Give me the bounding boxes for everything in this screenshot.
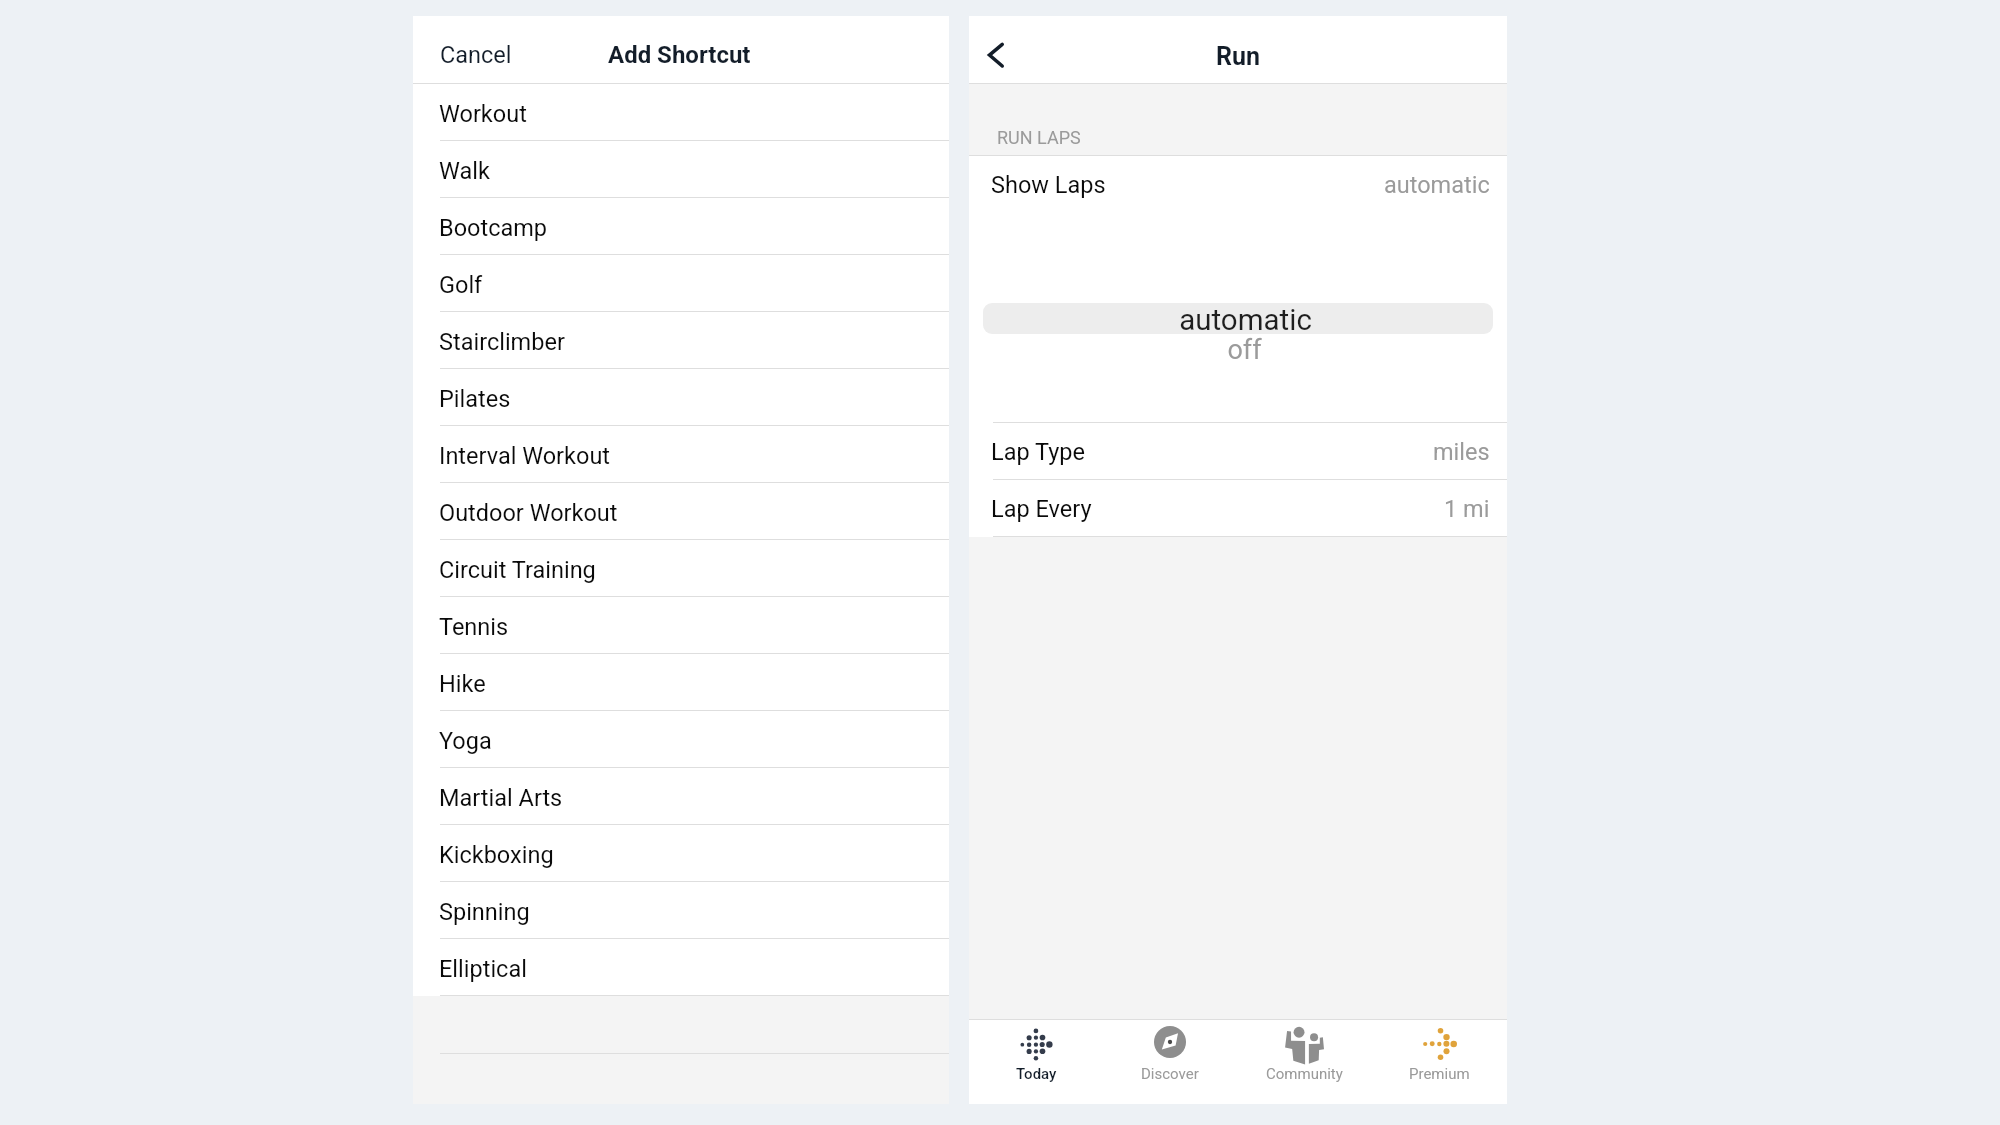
button[interactable]: automatic (983, 303, 1493, 334)
button[interactable]: Circuit Training (413, 540, 949, 597)
button[interactable]: Lap Type (969, 423, 1507, 480)
staticText: Circuit Training (439, 556, 596, 584)
staticText: Lap Every (991, 495, 1092, 523)
staticText: Tennis (439, 613, 509, 641)
button[interactable]: Hike (413, 654, 949, 711)
button[interactable]: Outdoor Workout (413, 483, 949, 540)
staticText: RUN LAPS (997, 127, 1081, 148)
staticText: Interval Workout (439, 442, 611, 470)
button[interactable]: Community (1237, 1019, 1372, 1104)
button[interactable]: Golf (413, 255, 949, 312)
staticText: automatic (1179, 303, 1312, 334)
button[interactable]: Spinning (413, 882, 949, 939)
button[interactable]: Bootcamp (413, 198, 949, 255)
staticText: Premium (1409, 1065, 1470, 1083)
staticText: automatic (1384, 171, 1490, 199)
button[interactable]: Stairclimber (413, 312, 949, 369)
button[interactable]: Interval Workout (413, 426, 949, 483)
staticText: Show Laps (991, 171, 1106, 199)
button[interactable]: Walk (413, 141, 949, 198)
staticText: Run (1216, 42, 1261, 71)
staticText: Stairclimber (439, 328, 565, 356)
staticText: Discover (1141, 1065, 1199, 1083)
button[interactable]: Premium (1372, 1019, 1507, 1104)
button[interactable]: Tennis (413, 597, 949, 654)
staticText: Yoga (439, 727, 492, 755)
button[interactable]: off (983, 334, 1493, 365)
button[interactable]: Workout (413, 84, 949, 141)
staticText: Add Shortcut (608, 41, 751, 69)
staticText: Hike (439, 670, 486, 698)
button[interactable]: Back (974, 31, 1018, 75)
button[interactable]: Cancel (427, 32, 523, 76)
staticText: Cancel (440, 41, 512, 69)
button[interactable]: Discover (1103, 1019, 1237, 1104)
staticText: Walk (439, 157, 490, 185)
staticText: 1 mi (1444, 495, 1490, 523)
staticText: Outdoor Workout (439, 499, 618, 527)
button[interactable]: Lap Every (969, 480, 1507, 537)
button[interactable]: Yoga (413, 711, 949, 768)
staticText: miles (1433, 438, 1490, 466)
staticText: Community (1266, 1065, 1343, 1083)
button[interactable]: Pilates (413, 369, 949, 426)
staticText: Elliptical (439, 955, 527, 983)
staticText: Bootcamp (439, 214, 548, 242)
staticText: Kickboxing (439, 841, 554, 869)
staticText: Pilates (439, 385, 511, 413)
button[interactable]: Kickboxing (413, 825, 949, 882)
button[interactable]: Show Laps (969, 156, 1507, 213)
staticText: Lap Type (991, 438, 1085, 466)
button[interactable]: Elliptical (413, 939, 949, 996)
staticText: Today (1016, 1065, 1057, 1083)
staticText: Golf (439, 271, 483, 299)
button[interactable]: Martial Arts (413, 768, 949, 825)
staticText: Spinning (439, 898, 530, 926)
staticText: Workout (439, 100, 527, 128)
button[interactable]: Today (969, 1019, 1103, 1104)
staticText: off (1227, 334, 1262, 365)
staticText: Martial Arts (439, 784, 563, 812)
